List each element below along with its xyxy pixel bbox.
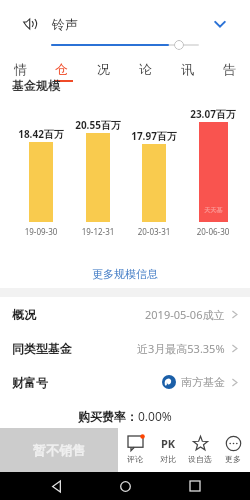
- staticText: 评论: [127, 454, 143, 464]
- staticText: 仓: [55, 61, 68, 77]
- staticText: 论: [139, 61, 152, 77]
- staticText: 对比: [160, 454, 176, 464]
- button[interactable]: 讯: [166, 58, 208, 80]
- button[interactable]: 财富号: [0, 365, 250, 399]
- staticText: 17.97百万: [127, 129, 181, 143]
- staticText: 购买费率：: [78, 409, 138, 424]
- staticText: 况: [97, 61, 110, 77]
- button[interactable]: 更多规模信息: [0, 262, 250, 286]
- staticText: 20.55百万: [71, 118, 125, 132]
- button[interactable]: 评论: [119, 428, 151, 472]
- button[interactable]: Expand: [210, 14, 230, 34]
- button[interactable]: Home: [111, 472, 139, 500]
- staticText: 财富号: [12, 375, 48, 390]
- staticText: 铃声: [52, 16, 78, 32]
- button[interactable]: 设自选: [184, 428, 216, 472]
- staticText: 近3月最高53.35%: [137, 341, 225, 356]
- staticText: 告: [223, 61, 236, 77]
- button[interactable]: PK: [152, 428, 184, 472]
- button[interactable]: 论: [124, 58, 166, 80]
- staticText: 情: [14, 61, 27, 77]
- staticText: 20-03-31: [127, 226, 181, 237]
- staticText: 19-09-30: [14, 226, 68, 237]
- staticText: 19-12-31: [71, 226, 125, 237]
- staticText: 18.42百万: [14, 127, 68, 141]
- staticText: 0.00%: [138, 408, 172, 424]
- button[interactable]: Back: [42, 472, 70, 500]
- staticText: 20-06-30: [186, 226, 240, 237]
- button[interactable]: 概况: [0, 297, 250, 331]
- staticText: 天天基: [199, 206, 228, 214]
- staticText: 2019-05-06成立: [145, 307, 225, 322]
- button[interactable]: 暂不销售: [0, 428, 118, 472]
- button[interactable]: Volume slider: [51, 39, 199, 51]
- staticText: 同类型基金: [12, 341, 72, 356]
- button[interactable]: 告: [208, 58, 250, 80]
- staticText: PK: [161, 436, 176, 451]
- staticText: 暂不销售: [33, 442, 85, 458]
- staticText: 基金规模: [12, 78, 60, 93]
- staticText: 设自选: [188, 454, 212, 464]
- button[interactable]: Volume: [22, 16, 38, 32]
- staticText: 南方基金: [181, 375, 225, 389]
- button[interactable]: 情: [0, 58, 41, 80]
- button[interactable]: Recents: [181, 472, 209, 500]
- staticText: 更多: [225, 454, 241, 464]
- staticText: 23.07百万: [186, 107, 240, 121]
- staticText: 概况: [12, 307, 36, 322]
- staticText: 更多规模信息: [92, 267, 158, 281]
- staticText: 讯: [181, 61, 194, 77]
- button[interactable]: 仓: [41, 58, 82, 80]
- button[interactable]: 同类型基金: [0, 331, 250, 365]
- button[interactable]: 况: [82, 58, 124, 80]
- button[interactable]: 更多: [217, 428, 249, 472]
